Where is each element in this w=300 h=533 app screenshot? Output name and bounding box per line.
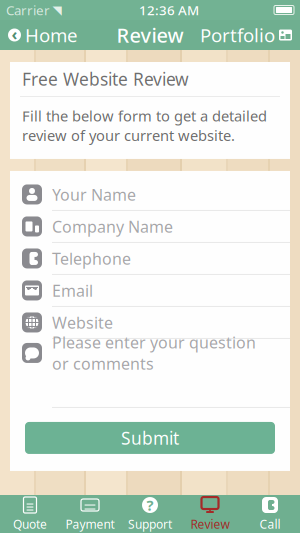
staticText: Your Name <box>52 184 136 205</box>
button[interactable]: Portfolio <box>192 20 300 50</box>
staticText: Submit <box>121 426 179 449</box>
button[interactable]: Submit <box>25 422 275 454</box>
staticText: Please enter your question or comments <box>52 332 256 374</box>
button[interactable]: ? <box>120 495 180 533</box>
staticText: ? <box>146 495 153 515</box>
staticText: Company Name <box>52 216 173 237</box>
button[interactable]: Telephone <box>10 243 290 275</box>
staticText: ‹ <box>11 23 17 45</box>
staticText: Payment <box>65 516 114 532</box>
button[interactable]: Review <box>180 495 240 533</box>
staticText: Review <box>190 516 229 532</box>
button[interactable]: Please enter your question or comments <box>10 339 290 407</box>
button[interactable]: Your Name <box>10 179 290 211</box>
staticText: Review <box>116 22 183 48</box>
button[interactable]: ‹ <box>0 20 86 50</box>
staticText: Support <box>128 516 172 532</box>
staticText: Telephone <box>52 248 131 269</box>
button[interactable]: Quote <box>0 495 60 533</box>
button[interactable]: Payment <box>60 495 120 533</box>
staticText: Website <box>52 312 113 333</box>
button[interactable]: Call <box>240 495 300 533</box>
staticText: Call <box>259 516 280 532</box>
staticText: ◥ <box>52 3 61 17</box>
staticText: Free Website Review <box>22 67 189 90</box>
button[interactable]: Company Name <box>10 211 290 243</box>
button[interactable]: Website <box>10 307 290 339</box>
staticText: Home <box>25 23 78 47</box>
button[interactable]: Email <box>10 275 290 307</box>
staticText: Email <box>52 280 93 301</box>
staticText: 12:36 AM <box>139 1 199 19</box>
staticText: Carrier <box>6 1 50 19</box>
staticText: Quote <box>13 516 47 532</box>
staticText: Fill the below form to get a detailed re… <box>22 106 267 145</box>
staticText: Portfolio <box>200 23 275 47</box>
